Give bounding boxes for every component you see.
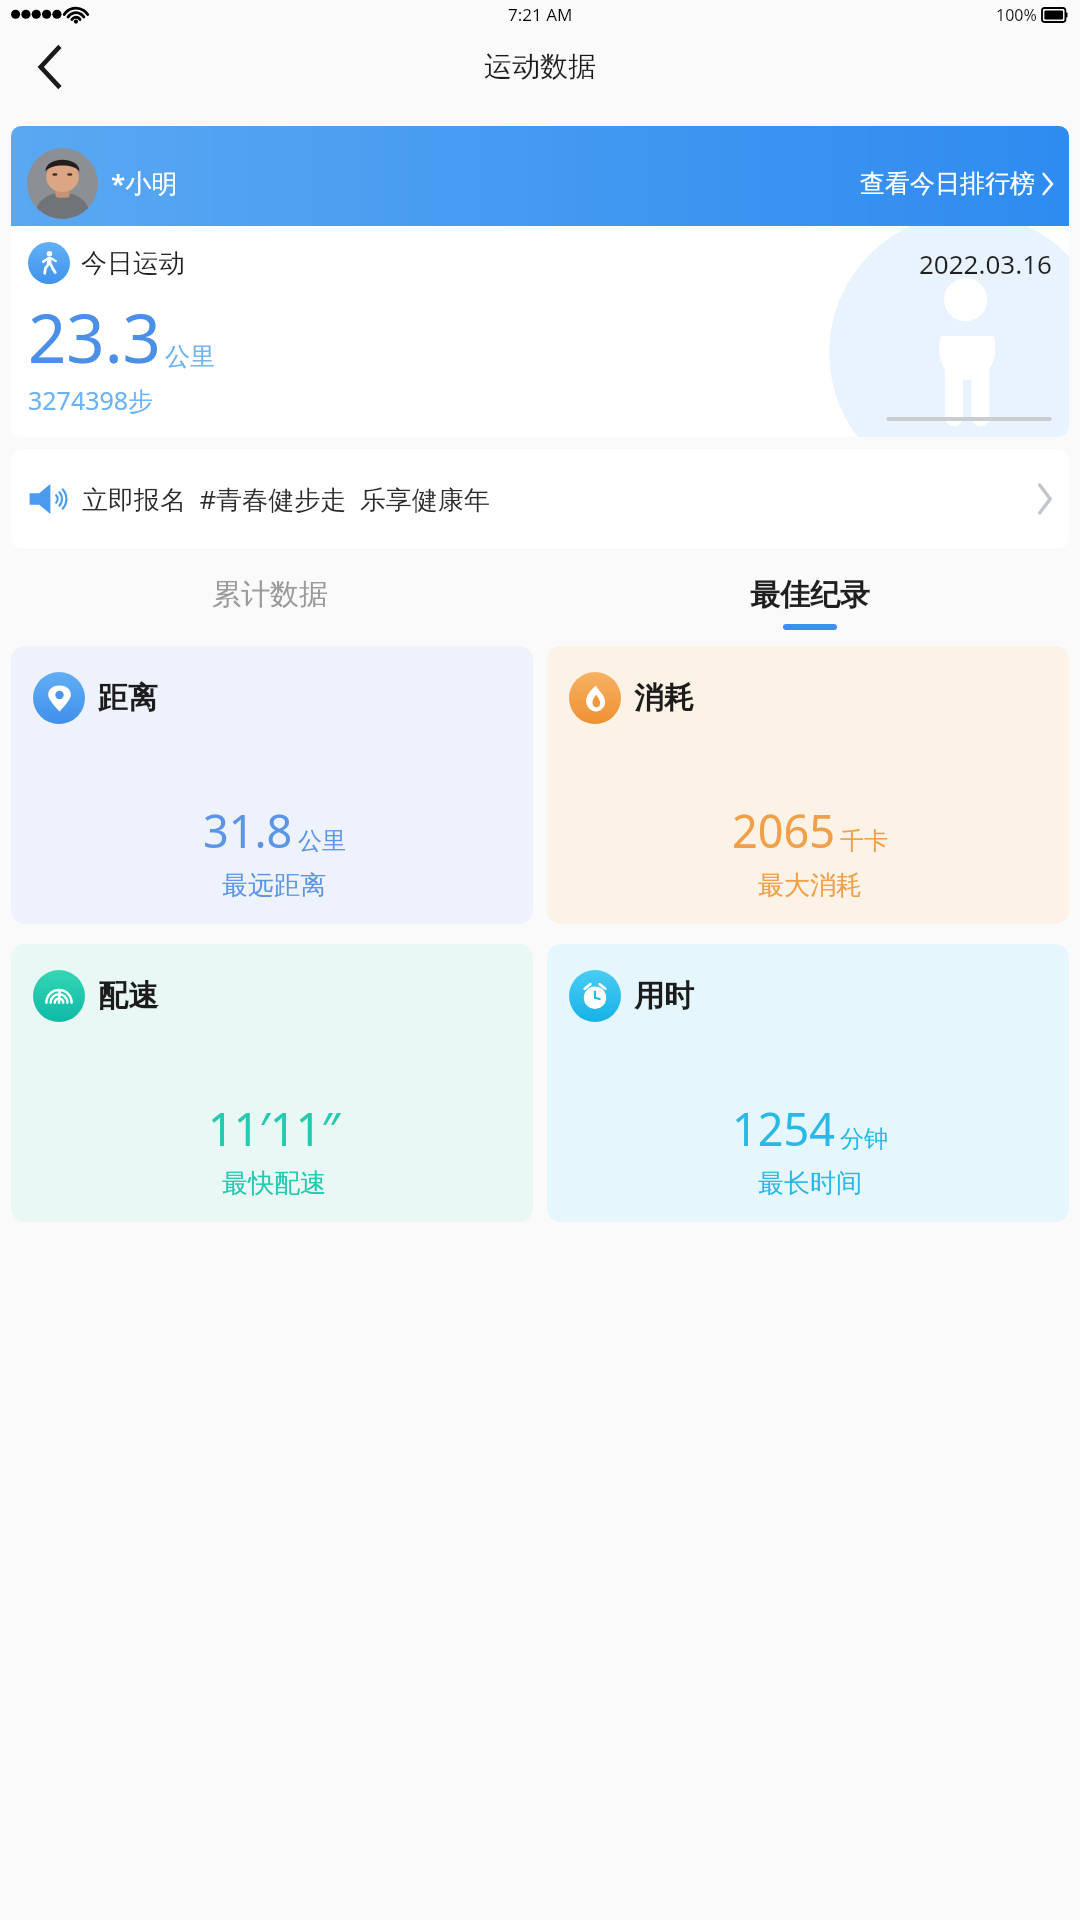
- button[interactable]: 消耗: [547, 646, 1069, 924]
- staticText: 11′11″: [208, 1098, 340, 1159]
- button[interactable]: 立即报名 #青春健步走 乐享健康年: [11, 450, 1069, 548]
- staticText: 31.8: [203, 800, 293, 861]
- staticText: 最远距离: [33, 869, 515, 902]
- staticText: 运动数据: [484, 49, 596, 84]
- staticText: 最快配速: [33, 1167, 515, 1200]
- staticText: 累计数据: [212, 576, 328, 613]
- button[interactable]: *小明: [11, 126, 1069, 226]
- staticText: 配速: [98, 977, 158, 1015]
- staticText: 距离: [98, 679, 158, 717]
- staticText: 千卡: [840, 826, 888, 856]
- staticText: 立即报名 #青春健步走 乐享健康年: [82, 481, 490, 517]
- staticText: 1254: [732, 1098, 835, 1159]
- staticText: 23.3: [28, 291, 161, 382]
- staticText: 100%: [996, 4, 1037, 26]
- staticText: 公里: [298, 826, 346, 856]
- staticText: 2065: [732, 800, 835, 861]
- staticText: 2022.03.16: [919, 246, 1052, 281]
- staticText: 用时: [634, 977, 694, 1015]
- staticText: 7:21 AM: [508, 3, 573, 26]
- staticText: 今日运动: [81, 247, 185, 280]
- button[interactable]: 最佳纪录: [540, 570, 1080, 636]
- button[interactable]: 配速: [11, 944, 533, 1222]
- staticText: 最长时间: [569, 1167, 1051, 1200]
- button[interactable]: 距离: [11, 646, 533, 924]
- button[interactable]: 同步微信步数: [886, 417, 1052, 421]
- button[interactable]: 用时: [547, 944, 1069, 1222]
- button[interactable]: Back: [22, 39, 78, 95]
- staticText: 最佳纪录: [750, 576, 870, 614]
- button[interactable]: 累计数据: [0, 570, 540, 635]
- staticText: 3274398步: [28, 383, 154, 417]
- staticText: 查看今日排行榜: [860, 168, 1035, 199]
- staticText: 最大消耗: [569, 869, 1051, 902]
- staticText: 消耗: [634, 679, 694, 717]
- staticText: 公里: [165, 341, 215, 372]
- staticText: 分钟: [840, 1124, 888, 1154]
- staticText: *小明: [111, 165, 178, 201]
